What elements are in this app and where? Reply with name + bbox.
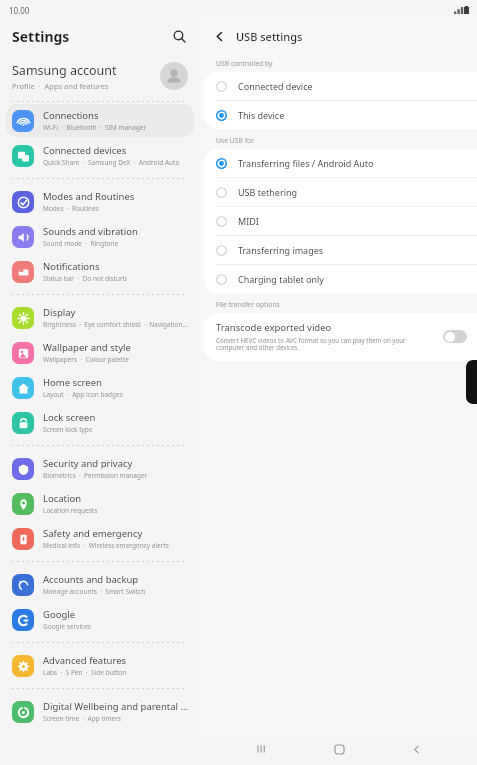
staticText: Use USB for [216,136,254,145]
button[interactable]: Accounts and backup [6,568,194,601]
button[interactable]: Search [166,23,192,49]
staticText: Wallpapers · Colour palette [43,355,129,364]
staticText: Screen time · App timers [43,714,121,723]
staticText: Sound mode · Ringtone [43,239,119,248]
staticText: Connected device [238,80,313,92]
button[interactable]: Display [6,301,194,334]
button[interactable]: Safety and emergency [6,522,194,555]
button[interactable]: Transcode exported video toggle [443,330,467,343]
staticText: Status bar · Do not disturb [43,274,127,283]
button[interactable]: Transcode exported video [204,313,477,361]
button[interactable]: Back [400,733,432,765]
button[interactable]: Charging tablet only [204,265,477,293]
button[interactable]: Transferring images [204,236,477,264]
button[interactable]: Recents [245,733,277,765]
staticText: Lock screen [43,411,96,424]
staticText: Display [43,306,76,319]
button[interactable]: Wallpaper and style [6,336,194,369]
staticText: USB tethering [238,186,298,198]
staticText: Location [43,492,82,505]
staticText: Accounts and backup [43,573,139,586]
button[interactable]: Sounds and vibration [6,220,194,253]
staticText: Notifications [43,260,100,273]
staticText: Biometrics · Permission manager [43,471,148,480]
staticText: Screen lock type [43,425,93,434]
staticText: Wallpaper and style [43,341,131,354]
button[interactable]: Connections [6,104,194,137]
button[interactable]: Home screen [6,371,194,404]
staticText: Home screen [43,376,102,389]
staticText: Modes and Routines [43,190,135,203]
staticText: File transfer options [216,300,280,309]
staticText: MIDI [238,215,259,227]
button[interactable]: Location [6,487,194,520]
button[interactable]: Lock screen [6,406,194,439]
button[interactable]: Google [6,603,194,636]
button[interactable]: USB tethering [204,178,477,206]
staticText: Location requests [43,506,98,515]
button[interactable]: This device [204,101,477,129]
button[interactable]: Notifications [6,255,194,288]
staticText: Charging tablet only [238,273,324,285]
staticText: Quick Share · Samsung DeX · Android Auto [43,158,180,167]
staticText: This device [238,109,285,121]
staticText: Brightness · Eye comfort shield · Naviga… [43,320,188,329]
staticText: Connections [43,109,99,122]
staticText: Transferring images [238,244,324,256]
staticText: Modes · Routines [43,204,99,213]
staticText: Google services [43,622,91,631]
button[interactable]: Home [323,733,355,765]
button[interactable]: Edge panel handle [466,360,477,404]
button[interactable]: MIDI [204,207,477,235]
staticText: USB controlled by [216,59,273,68]
staticText: Settings [12,27,70,46]
staticText: 10.00 [9,5,30,16]
staticText: USB settings [236,29,303,44]
button[interactable]: Connected devices [6,139,194,172]
button[interactable]: Samsung account [0,52,200,100]
button[interactable]: Back [208,25,230,47]
button[interactable]: Advanced features [6,649,194,682]
staticText: Security and privacy [43,457,133,470]
staticText: Layout · App icon badges [43,390,123,399]
staticText: Labs · S Pen · Side button [43,668,127,677]
staticText: Advanced features [43,654,127,667]
staticText: Profile · Apps and features [12,81,109,91]
staticText: Wi-Fi · Bluetooth · SIM manager [43,123,147,132]
staticText: Transferring files / Android Auto [238,157,374,169]
staticText: Transcode exported video [216,321,332,334]
staticText: Safety and emergency [43,527,143,540]
staticText: Samsung account [12,62,117,79]
button[interactable]: Connected device [204,72,477,100]
staticText: Sounds and vibration [43,225,138,238]
staticText: Digital Wellbeing and parental controls [43,700,188,713]
staticText: Google [43,608,76,621]
staticText: Manage accounts · Smart Switch [43,587,146,596]
button[interactable]: Modes and Routines [6,185,194,218]
staticText: Medical info · Wireless emergency alerts [43,541,169,550]
button[interactable]: Transferring files / Android Auto [204,149,477,177]
button[interactable]: Security and privacy [6,452,194,485]
staticText: Connected devices [43,144,127,157]
button[interactable]: Digital Wellbeing and parental controls [6,695,194,728]
staticText: Convert HEVC videos to AVC format so you… [216,336,435,352]
